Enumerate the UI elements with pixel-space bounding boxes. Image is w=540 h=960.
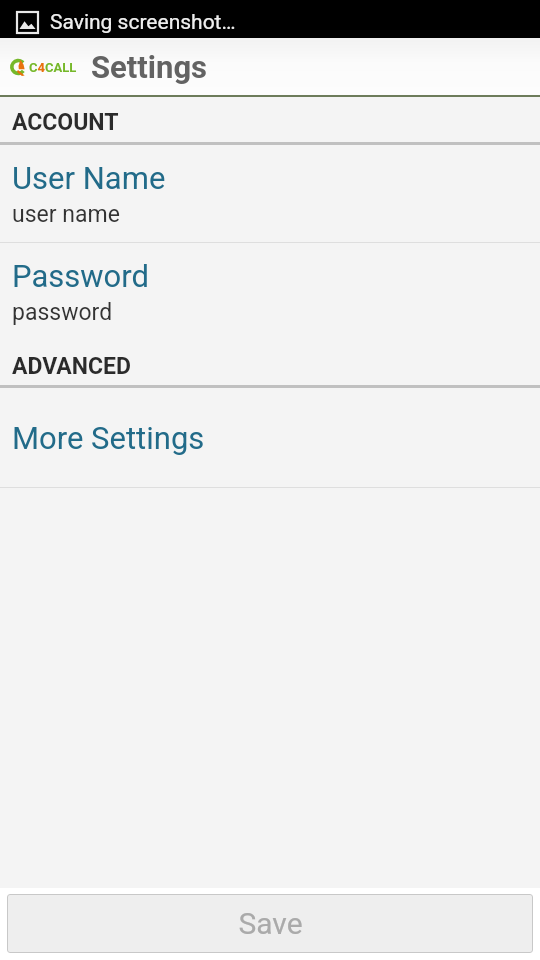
staticText: ADVANCED [12,353,131,380]
button[interactable]: User Name [0,145,540,242]
staticText: Save [238,906,303,941]
staticText: User Name [12,160,166,196]
staticText: C4CALL [29,60,77,75]
button[interactable]: More Settings [0,388,540,487]
staticText: Saving screenshot… [50,10,236,35]
other: Screenshot saved [16,11,39,34]
staticText: user name [12,201,120,228]
staticText: ACCOUNT [12,109,119,136]
staticText: Password [12,258,149,294]
staticText: Settings [91,49,208,85]
staticText: password [12,299,113,326]
button[interactable]: Password [0,243,540,340]
staticText: More Settings [12,420,205,456]
button[interactable]: Save [7,894,533,953]
button[interactable]: C4CALL [0,38,540,95]
